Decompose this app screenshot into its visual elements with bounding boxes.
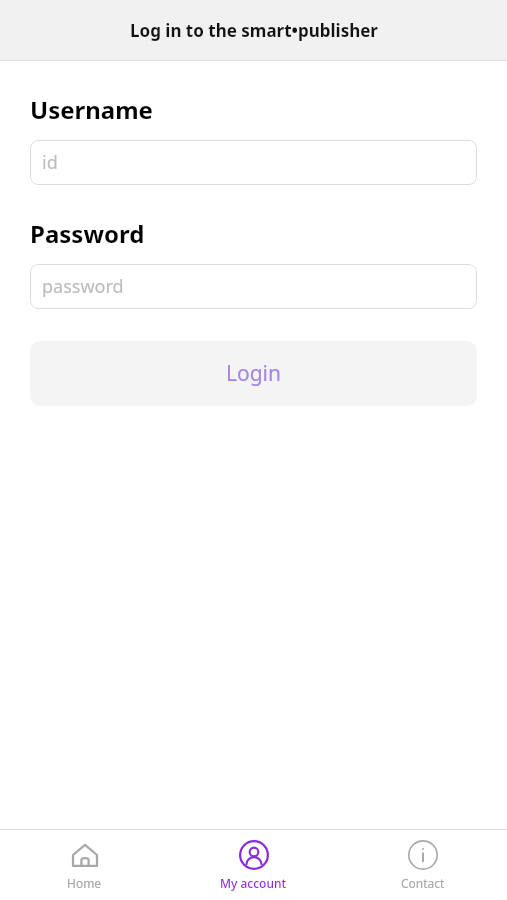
button[interactable]: My account bbox=[169, 830, 338, 900]
staticText: Username bbox=[30, 93, 153, 126]
button[interactable]: Login bbox=[30, 341, 477, 406]
staticText: Log in to the smart•publisher bbox=[130, 19, 378, 42]
button[interactable]: Home bbox=[0, 830, 169, 900]
staticText: My account bbox=[220, 875, 287, 891]
other: Home bbox=[70, 840, 100, 870]
other: My account bbox=[239, 840, 269, 870]
staticText: password bbox=[42, 274, 124, 299]
button[interactable]: Password field bbox=[30, 264, 477, 309]
staticText: id bbox=[42, 150, 58, 175]
staticText: Login bbox=[226, 359, 282, 388]
button[interactable]: Username field bbox=[30, 140, 477, 185]
staticText: Contact bbox=[401, 875, 445, 891]
staticText: Home bbox=[67, 875, 102, 891]
button[interactable]: Contact bbox=[338, 830, 507, 900]
staticText: Password bbox=[30, 217, 145, 250]
other: Contact bbox=[408, 840, 438, 870]
